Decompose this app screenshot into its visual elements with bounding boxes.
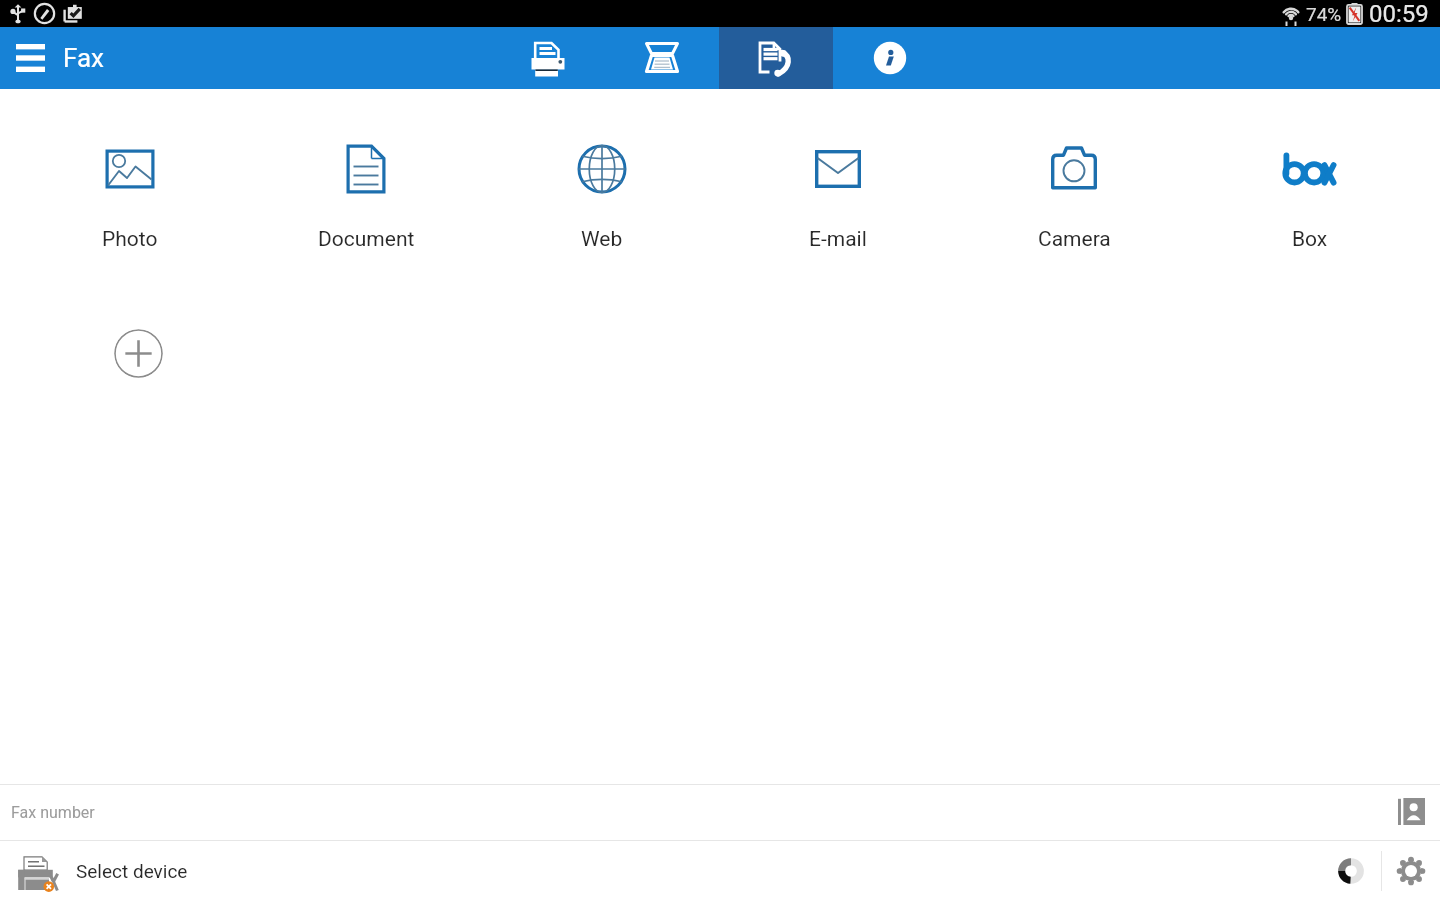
button[interactable]: Select device (0, 841, 1320, 900)
staticText: Document (318, 227, 415, 252)
button[interactable]: Fax (719, 27, 833, 89)
button[interactable]: Print (491, 27, 605, 89)
button[interactable]: Info (833, 27, 947, 89)
button[interactable]: Fax number (0, 785, 1440, 840)
button[interactable]: Document (248, 141, 484, 252)
button[interactable]: Camera (956, 141, 1192, 252)
button[interactable]: Settings (1382, 842, 1440, 900)
staticText: Fax number (11, 803, 95, 822)
button[interactable]: Box (1192, 141, 1428, 252)
staticText: Select device (76, 860, 188, 882)
button[interactable]: Menu (0, 27, 61, 89)
staticText: Camera (1038, 227, 1111, 252)
staticText: Box (1292, 227, 1328, 252)
button[interactable]: Scan (605, 27, 719, 89)
button[interactable]: Status (1321, 841, 1381, 900)
staticText: Web (581, 227, 623, 252)
staticText: E-mail (809, 227, 867, 252)
staticText: 00:59 (1369, 0, 1429, 27)
button[interactable]: E-mail (720, 141, 956, 252)
button[interactable]: Web (484, 141, 720, 252)
staticText: Photo (102, 227, 158, 252)
button[interactable]: Contacts (1395, 795, 1427, 827)
staticText: Fax (63, 43, 104, 73)
button[interactable]: Photo (12, 141, 248, 252)
staticText: 74% (1306, 3, 1342, 25)
button[interactable]: Add (114, 329, 163, 378)
